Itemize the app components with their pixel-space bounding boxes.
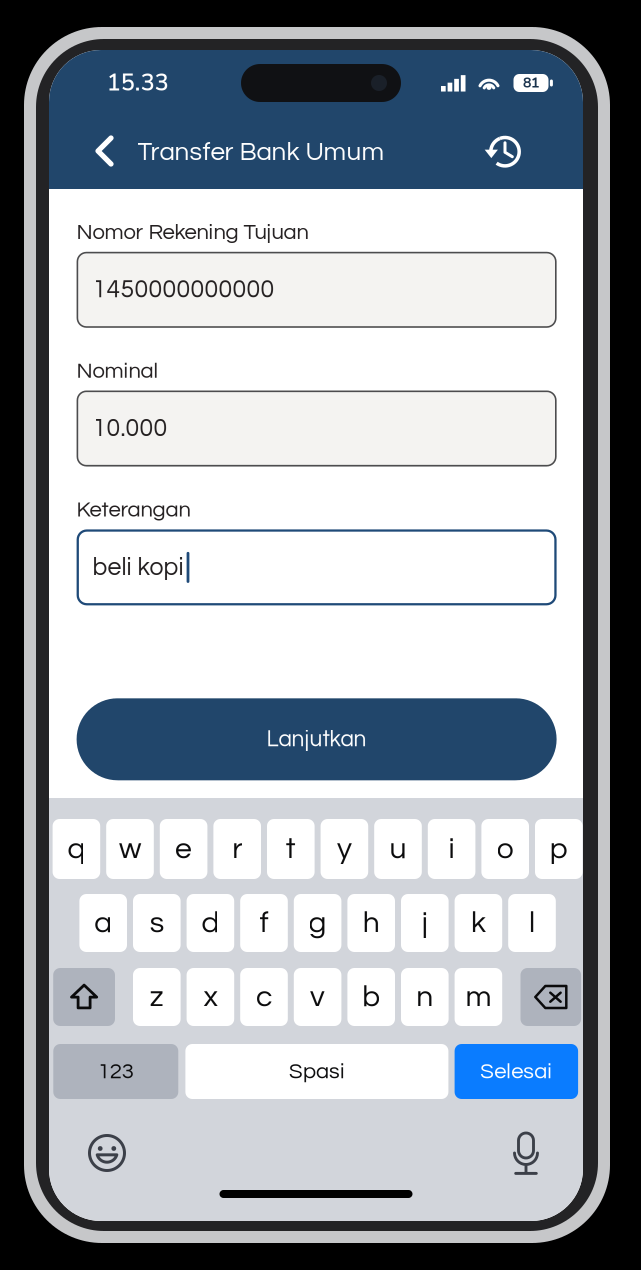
staticText: v bbox=[310, 982, 325, 1012]
staticText: j bbox=[422, 908, 428, 938]
staticText: Keterangan bbox=[77, 499, 191, 521]
staticText: Selesai bbox=[480, 1060, 552, 1083]
button[interactable]: g bbox=[294, 894, 341, 952]
staticText: q bbox=[67, 834, 85, 864]
staticText: Lanjutkan bbox=[267, 728, 367, 751]
button[interactable]: w bbox=[106, 819, 154, 879]
button[interactable]: b bbox=[347, 968, 395, 1026]
staticText: r bbox=[232, 834, 242, 864]
staticText: 15.33 bbox=[107, 67, 169, 99]
staticText: n bbox=[416, 982, 433, 1012]
button[interactable]: i bbox=[428, 819, 475, 879]
button[interactable]: d bbox=[187, 894, 234, 952]
button[interactable]: t bbox=[267, 819, 315, 879]
staticText: c bbox=[256, 982, 272, 1012]
staticText: d bbox=[201, 908, 219, 938]
staticText: 1450000000000 bbox=[93, 277, 275, 302]
button[interactable]: Back bbox=[82, 129, 126, 173]
button[interactable]: Nomor Rekening Tujuan bbox=[77, 224, 557, 328]
button[interactable]: 123 bbox=[53, 1044, 178, 1099]
staticText: e bbox=[175, 834, 192, 864]
button[interactable]: Spasi bbox=[185, 1044, 448, 1099]
button[interactable]: h bbox=[347, 894, 395, 952]
button[interactable]: j bbox=[401, 894, 449, 952]
button[interactable]: Emoji keyboard bbox=[80, 1130, 134, 1176]
button[interactable]: z bbox=[133, 968, 181, 1026]
staticText: a bbox=[94, 908, 112, 938]
staticText: beli kopi bbox=[93, 555, 184, 580]
button[interactable]: u bbox=[374, 819, 422, 879]
button[interactable]: Delete bbox=[520, 968, 581, 1026]
staticText: i bbox=[449, 834, 455, 864]
staticText: p bbox=[550, 834, 568, 864]
button[interactable]: m bbox=[455, 968, 502, 1026]
button[interactable]: Dictation bbox=[499, 1130, 553, 1176]
button[interactable]: r bbox=[213, 819, 261, 879]
staticText: Nomor Rekening Tujuan bbox=[77, 221, 309, 244]
staticText: k bbox=[471, 908, 486, 938]
button[interactable]: v bbox=[294, 968, 341, 1026]
staticText: s bbox=[150, 908, 164, 938]
staticText: l bbox=[529, 908, 535, 938]
staticText: t bbox=[286, 834, 296, 864]
staticText: Spasi bbox=[289, 1060, 345, 1083]
button[interactable]: e bbox=[160, 819, 207, 879]
staticText: w bbox=[119, 834, 141, 864]
button[interactable]: Lanjutkan bbox=[77, 698, 557, 780]
staticText: 10.000 bbox=[93, 416, 168, 441]
button[interactable]: y bbox=[321, 819, 368, 879]
staticText: m bbox=[465, 982, 491, 1012]
staticText: g bbox=[309, 908, 327, 938]
button[interactable]: p bbox=[535, 819, 583, 879]
button[interactable]: k bbox=[455, 894, 502, 952]
button[interactable]: s bbox=[133, 894, 181, 952]
staticText: h bbox=[363, 908, 380, 938]
staticText: 81 bbox=[523, 73, 539, 93]
staticText: z bbox=[150, 982, 164, 1012]
button[interactable]: c bbox=[240, 968, 288, 1026]
button[interactable]: Transfer history bbox=[480, 129, 526, 173]
button[interactable]: o bbox=[481, 819, 529, 879]
staticText: b bbox=[362, 982, 380, 1012]
staticText: f bbox=[259, 908, 268, 938]
staticText: Transfer Bank Umum bbox=[137, 139, 384, 165]
staticText: y bbox=[337, 834, 352, 864]
staticText: o bbox=[497, 834, 514, 864]
button[interactable]: l bbox=[508, 894, 556, 952]
button[interactable]: Selesai bbox=[455, 1044, 578, 1099]
button[interactable]: Nominal bbox=[77, 362, 557, 466]
staticText: 123 bbox=[98, 1060, 134, 1083]
button[interactable]: n bbox=[401, 968, 449, 1026]
button[interactable]: Shift bbox=[53, 968, 115, 1026]
button[interactable]: f bbox=[240, 894, 288, 952]
button[interactable]: a bbox=[79, 894, 127, 952]
button[interactable]: x bbox=[187, 968, 234, 1026]
button[interactable]: q bbox=[53, 819, 100, 879]
staticText: x bbox=[203, 982, 217, 1012]
staticText: Nominal bbox=[77, 360, 159, 382]
button[interactable]: Keterangan bbox=[77, 501, 557, 605]
staticText: u bbox=[389, 834, 406, 864]
